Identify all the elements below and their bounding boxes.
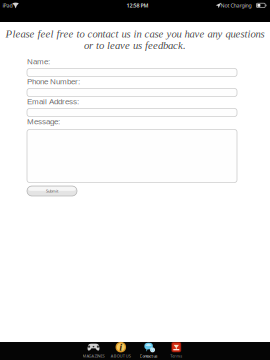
staticText: or to leave us feedback. [84,40,186,51]
staticText: Email Address: [27,97,79,106]
button[interactable]: Terms [163,341,190,359]
staticText: ABOUT US [111,353,131,358]
staticText: MAGAZINES [82,353,104,358]
staticText: Please feel free to contact us in case y… [5,28,264,40]
staticText: Message: [27,117,60,126]
button[interactable]: i [107,341,134,359]
staticText: 12:58 PM [126,2,148,9]
staticText: Terms [170,353,182,358]
staticText: Not Charging [220,2,251,9]
staticText: iPad [2,2,12,9]
staticText: Contact us [140,353,158,358]
staticText: i [119,341,122,353]
staticText: Submit [46,188,58,194]
button[interactable]: Submit [27,186,77,196]
staticText: Name: [27,57,50,66]
button[interactable]: Contact us [135,341,162,359]
button[interactable]: MAGAZINES [80,341,107,359]
staticText: Phone Number: [27,77,80,86]
